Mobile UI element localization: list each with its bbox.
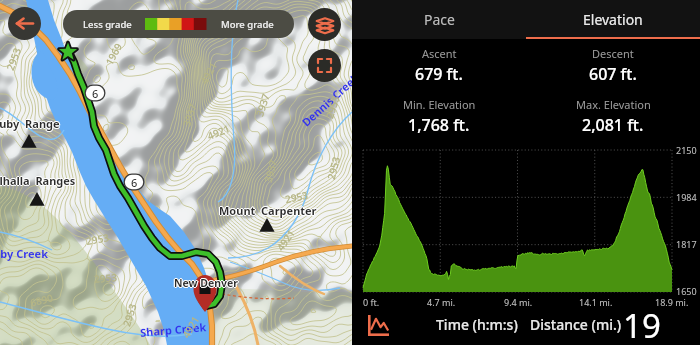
staticText: 6: [92, 86, 99, 101]
staticText: New Denver: [174, 276, 239, 290]
button[interactable]: Map layers: [308, 8, 341, 41]
staticText: 14.1 mi.: [579, 296, 613, 308]
staticText: 2953: [119, 302, 140, 328]
staticText: New Denver: [175, 276, 240, 290]
staticText: Dennis Creek: [298, 69, 363, 129]
staticText: Mount Carpenter: [220, 203, 318, 218]
staticText: Ruby Range: [0, 116, 59, 131]
staticText: Elevation: [583, 10, 643, 29]
staticText: New Denver: [174, 275, 239, 289]
staticText: 2953: [284, 188, 309, 206]
staticText: Ruby Range: [0, 117, 60, 132]
staticText: 607 ft.: [589, 63, 637, 85]
staticText: 1817: [676, 238, 697, 250]
staticText: 19: [623, 303, 661, 340]
staticText: Pace: [424, 10, 455, 29]
staticText: 1,768 ft.: [408, 114, 470, 136]
staticText: 6890: [29, 290, 54, 309]
staticText: Time (h:m:s): [436, 315, 518, 334]
button[interactable]: Fullscreen: [308, 49, 341, 82]
staticText: New Denver: [173, 276, 238, 290]
staticText: Ruby Range: [0, 116, 61, 131]
staticText: 2,081 ft.: [582, 114, 644, 136]
staticText: 4921: [205, 121, 232, 143]
staticText: 0 ft.: [363, 296, 380, 308]
staticText: More grade: [221, 18, 274, 31]
staticText: 3937: [261, 158, 280, 184]
staticText: 679 ft.: [415, 63, 463, 85]
staticText: Valhalla Ranges: [0, 172, 76, 187]
staticText: 4.7 mi.: [427, 296, 456, 308]
staticText: Sharp Creek: [139, 319, 208, 340]
staticText: Max. Elevation: [576, 97, 651, 112]
staticText: Less grade: [83, 18, 132, 31]
staticText: Valhalla Ranges: [0, 173, 75, 188]
staticText: 2953: [322, 94, 343, 120]
staticText: Min. Elevation: [403, 97, 476, 112]
staticText: Valhalla Ranges: [0, 173, 76, 188]
staticText: 3937: [179, 102, 200, 128]
staticText: 2953: [3, 46, 24, 72]
button[interactable]: Elevation: [526, 0, 700, 39]
staticText: Distance (mi.): [530, 315, 622, 334]
staticText: 4921: [273, 227, 298, 253]
staticText: 4921: [179, 313, 202, 340]
button[interactable]: Less grade: [63, 10, 294, 38]
staticText: Valhalla Ranges: [0, 174, 76, 189]
staticText: Valhalla Ranges: [0, 173, 77, 188]
staticText: 2150: [676, 144, 697, 156]
staticText: 4921: [197, 60, 220, 86]
button[interactable]: Elevation chart: [365, 312, 391, 338]
staticText: Ascent: [422, 46, 457, 61]
staticText: Ruby Range: [0, 116, 60, 131]
staticText: 6: [131, 175, 138, 190]
button[interactable]: Pace: [352, 0, 526, 39]
staticText: Descent: [592, 46, 634, 61]
staticText: New Denver: [174, 277, 239, 291]
staticText: Ruby Range: [0, 115, 60, 130]
staticText: Mount Carpenter: [219, 204, 317, 219]
staticText: 2953: [85, 230, 110, 248]
staticText: Mount Carpenter: [218, 203, 316, 218]
staticText: 1984: [676, 191, 697, 203]
staticText: 2953: [93, 270, 117, 286]
staticText: 18.9 mi.: [655, 296, 689, 308]
staticText: 9.4 mi.: [504, 296, 533, 308]
staticText: Mount Carpenter: [219, 203, 317, 218]
staticText: Ruby Creek: [0, 246, 48, 261]
staticText: 2953: [324, 155, 343, 181]
staticText: 1650: [676, 285, 697, 297]
staticText: Mount Carpenter: [219, 202, 317, 217]
staticText: 5906: [237, 6, 264, 30]
staticText: 3937: [252, 92, 273, 118]
staticText: 1969: [102, 41, 125, 67]
button[interactable]: Back: [8, 7, 41, 40]
